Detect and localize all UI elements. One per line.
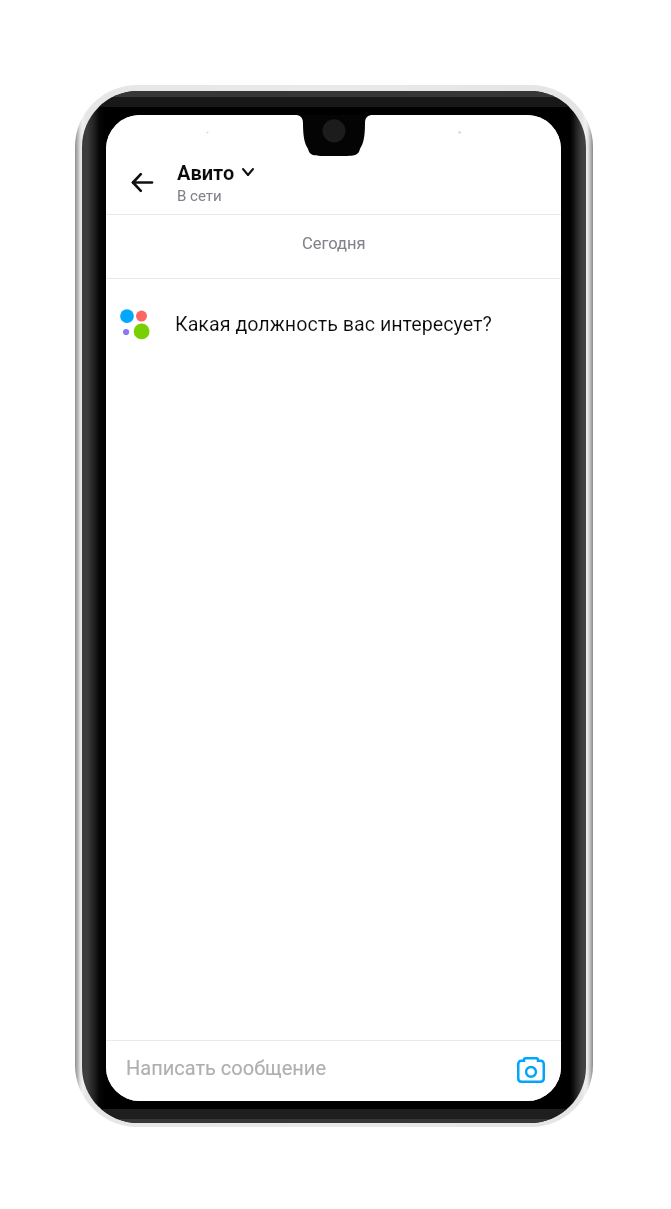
staticText: В сети [177, 187, 222, 205]
staticText: Сегодня [302, 234, 366, 253]
button[interactable]: Какая должность вас интересует? [106, 301, 561, 351]
button[interactable]: Back [120, 160, 164, 204]
staticText: Написать сообщение [126, 1056, 326, 1079]
staticText: Какая должность вас интересует? [175, 313, 492, 336]
staticText: Авито [177, 161, 235, 184]
button[interactable]: Camera [500, 1040, 561, 1101]
